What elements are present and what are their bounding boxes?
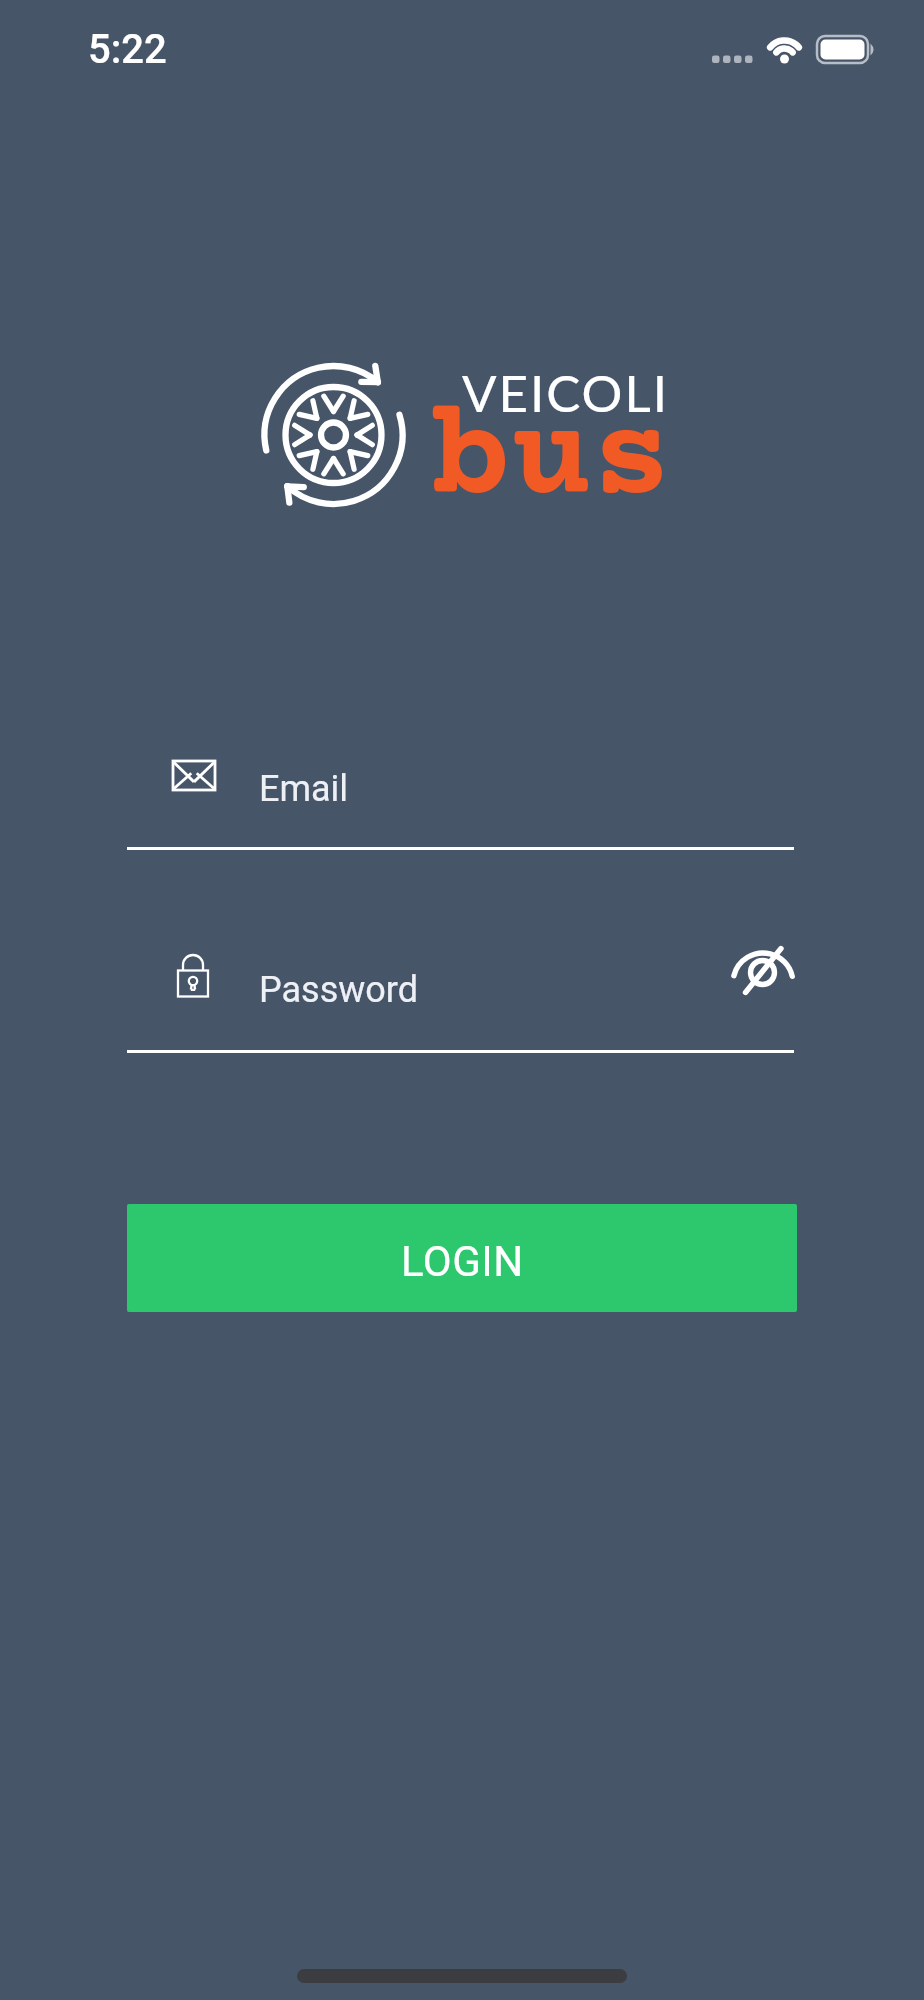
button[interactable]: Email [127,730,797,848]
button[interactable]: Password [127,930,707,1051]
staticText: bus [431,387,673,537]
staticText: Password [259,969,419,1011]
staticText: Email [259,768,349,810]
button[interactable]: LOGIN [127,1204,797,1312]
staticText: 5:22 [88,26,167,73]
staticText: VEICOLI [462,362,669,423]
staticText: LOGIN [401,1237,524,1286]
button[interactable] [720,930,810,1010]
